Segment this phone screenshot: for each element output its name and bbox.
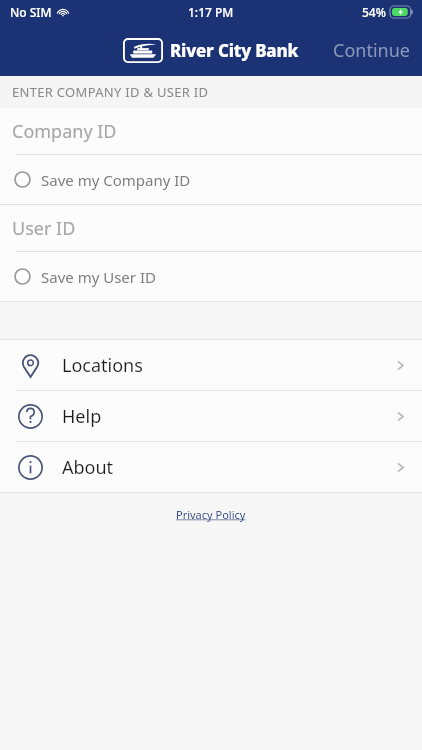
staticText: Help (62, 404, 102, 429)
button[interactable]: Help (0, 391, 422, 441)
staticText: No SIM (10, 4, 52, 20)
button[interactable]: Locations (0, 340, 422, 390)
button[interactable]: Privacy Policy (176, 507, 246, 522)
staticText: 1:17 PM (188, 4, 234, 20)
button[interactable]: About (0, 442, 422, 492)
staticText: Company ID (12, 119, 117, 144)
button[interactable]: Save my Company ID (0, 155, 422, 204)
button[interactable]: Save my User ID (0, 252, 422, 301)
staticText: Locations (62, 353, 143, 378)
staticText: Save my User ID (41, 267, 156, 287)
button[interactable]: Company ID (0, 108, 422, 154)
staticText: Privacy Policy (176, 507, 246, 522)
staticText: ENTER COMPANY ID & USER ID (12, 83, 209, 101)
staticText: River City Bank (170, 39, 299, 62)
button[interactable]: User ID (0, 205, 422, 251)
button[interactable]: Continue (321, 28, 422, 73)
staticText: 54% (362, 4, 386, 20)
staticText: User ID (12, 216, 76, 241)
staticText: Continue (333, 38, 410, 63)
staticText: About (62, 455, 114, 480)
staticText: Save my Company ID (41, 170, 191, 190)
